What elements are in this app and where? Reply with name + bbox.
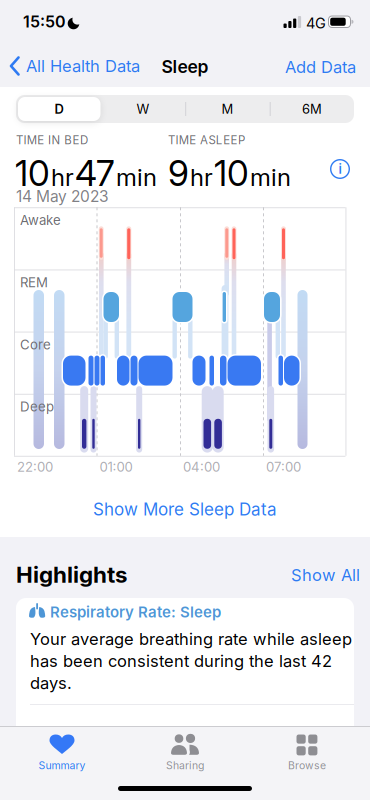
staticText: days. — [30, 673, 72, 693]
button[interactable]: Respiratory Rate: Sleep — [16, 598, 354, 758]
staticText: 9 — [168, 152, 189, 194]
staticText: All Health Data — [26, 56, 140, 76]
staticText: Add Data — [285, 57, 356, 77]
staticText: Awake — [20, 212, 61, 228]
staticText: Summary — [38, 759, 85, 772]
staticText: Show All — [291, 565, 360, 585]
staticText: 15:50 — [23, 12, 66, 31]
staticText: i — [338, 161, 341, 177]
staticText: hr — [190, 163, 213, 192]
staticText: 47 — [75, 152, 115, 194]
staticText: Highlights — [16, 561, 127, 588]
button[interactable]: About Sleep — [330, 159, 350, 179]
button[interactable]: M — [185, 95, 269, 123]
button[interactable]: Browse — [262, 734, 352, 772]
button[interactable]: D — [17, 95, 101, 123]
button[interactable]: Show More Sleep Data — [93, 499, 277, 520]
staticText: W — [136, 101, 149, 117]
staticText: 04:00 — [183, 459, 220, 475]
staticText: 22:00 — [17, 459, 53, 475]
staticText: hr — [51, 163, 74, 192]
button[interactable]: Sharing — [140, 734, 230, 772]
staticText: Show More Sleep Data — [93, 499, 277, 520]
staticText: TIME IN BED — [16, 133, 88, 147]
staticText: M — [221, 101, 233, 117]
staticText: Respiratory Rate: Sleep — [50, 603, 221, 621]
button[interactable]: Show All — [291, 565, 360, 585]
staticText: 07:00 — [266, 459, 301, 475]
staticText: Browse — [288, 759, 326, 772]
staticText: 10 — [15, 152, 50, 194]
staticText: TIME ASLEEP — [168, 133, 245, 147]
staticText: D — [54, 101, 63, 117]
staticText: Sleep — [161, 56, 208, 77]
button[interactable]: Back to All Health Data — [10, 56, 140, 76]
staticText: Sharing — [166, 759, 204, 772]
staticText: Deep — [20, 399, 54, 415]
staticText: 10 — [214, 152, 249, 194]
staticText: min — [250, 163, 291, 192]
staticText: Core — [20, 337, 51, 353]
button[interactable]: 6M — [270, 95, 354, 123]
staticText: 4G — [306, 14, 326, 32]
button[interactable]: W — [101, 95, 185, 123]
staticText: 01:00 — [99, 459, 132, 475]
staticText: 14 May 2023 — [16, 187, 109, 206]
staticText: Your average breathing rate while asleep — [30, 629, 352, 649]
staticText: REM — [20, 274, 48, 290]
staticText: 6M — [302, 101, 322, 117]
staticText: min — [116, 163, 157, 192]
button[interactable]: Add Data — [285, 57, 356, 77]
button[interactable]: Summary — [17, 734, 107, 772]
staticText: has been consistent during the last 42 — [30, 651, 332, 671]
